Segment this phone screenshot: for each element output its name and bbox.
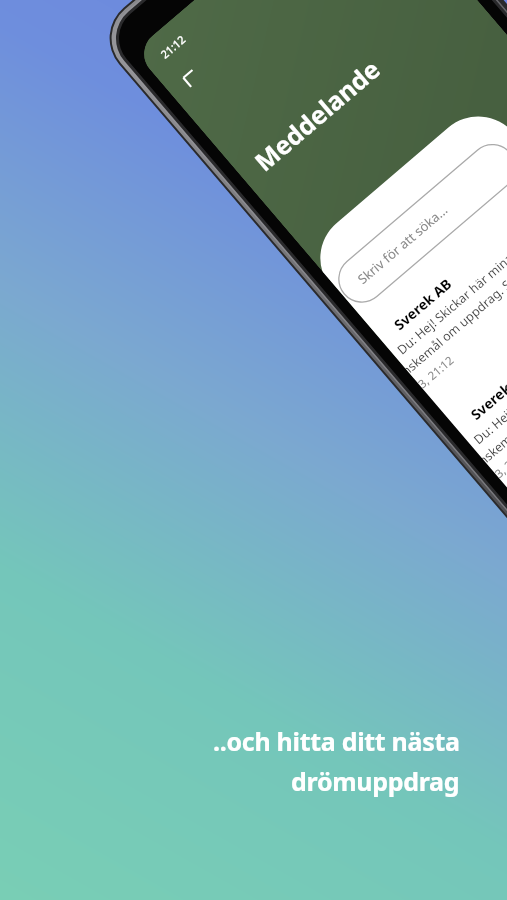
button[interactable] [0,0,507,900]
button[interactable]: Telefon som visar Meddelande-appen [0,0,507,900]
